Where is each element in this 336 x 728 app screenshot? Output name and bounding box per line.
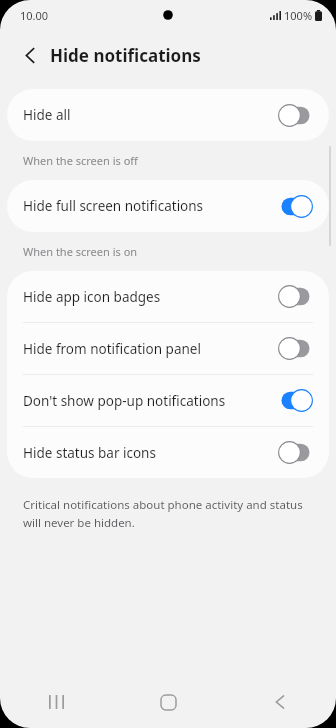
- staticText: 100%: [284, 8, 313, 23]
- staticText: Don't show pop-up notifications: [23, 392, 278, 410]
- staticText: When the screen is off: [23, 153, 138, 168]
- staticText: Hide status bar icons: [23, 444, 278, 462]
- button[interactable]: Hide app icon badges: [7, 271, 329, 322]
- other: Off: [278, 285, 313, 308]
- other: Off: [278, 441, 313, 464]
- other: Off: [278, 337, 313, 360]
- staticText: Hide notifications: [50, 44, 201, 67]
- button[interactable]: Hide status bar icons: [7, 427, 329, 478]
- button[interactable]: Hide from notification panel: [7, 323, 329, 374]
- button[interactable]: Home: [112, 676, 224, 728]
- button[interactable]: Back: [12, 37, 48, 73]
- staticText: 10.00: [20, 8, 49, 23]
- button[interactable]: Hide all: [7, 89, 329, 141]
- staticText: Hide full screen notifications: [23, 197, 278, 215]
- staticText: Hide app icon badges: [23, 288, 278, 306]
- button[interactable]: Hide full screen notifications: [7, 180, 329, 232]
- button[interactable]: Don't show pop-up notifications: [7, 375, 329, 426]
- staticText: Hide all: [23, 106, 278, 124]
- staticText: Hide from notification panel: [23, 340, 278, 358]
- staticText: When the screen is on: [23, 244, 138, 259]
- button[interactable]: Back: [224, 676, 336, 728]
- other: Off: [278, 104, 313, 127]
- button[interactable]: Recent apps: [0, 676, 112, 728]
- other: On: [278, 389, 313, 412]
- other: On: [278, 195, 313, 218]
- staticText: Critical notifications about phone activ…: [23, 497, 308, 530]
